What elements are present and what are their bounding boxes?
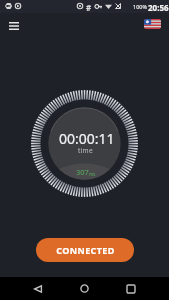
staticText: 00:00:11 <box>59 129 115 148</box>
button[interactable]: Recent apps <box>119 277 143 300</box>
staticText: 100% <box>133 3 148 10</box>
staticText: CONNECTED <box>56 244 115 256</box>
staticText: time <box>78 146 93 155</box>
button[interactable]: Back <box>26 277 50 300</box>
button[interactable]: Selected country <box>144 19 161 29</box>
button[interactable]: Menu <box>4 16 24 36</box>
staticText: 20:56 <box>148 2 169 13</box>
button[interactable]: Home <box>72 277 96 300</box>
button[interactable]: CONNECTED <box>36 238 134 262</box>
staticText: ms <box>89 171 96 177</box>
staticText: # <box>86 2 92 13</box>
staticText: 307 <box>76 167 89 177</box>
